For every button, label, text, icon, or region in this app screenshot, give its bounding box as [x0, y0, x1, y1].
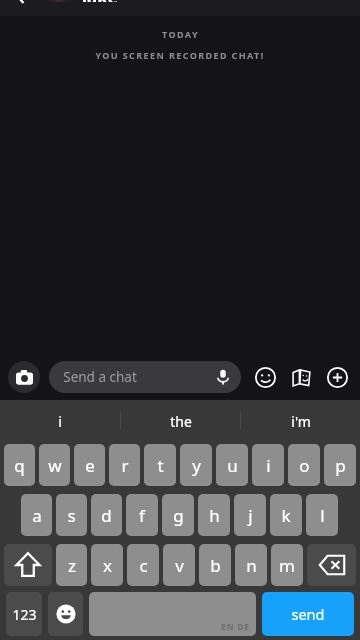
button[interactable]: a [21, 494, 52, 536]
staticText: o [299, 454, 310, 477]
button[interactable]: n [235, 544, 267, 586]
staticText: f [139, 504, 145, 527]
button[interactable]: More [322, 362, 352, 392]
button[interactable]: h [198, 494, 230, 536]
button[interactable]: u [216, 444, 248, 486]
staticText: l [320, 504, 325, 527]
button[interactable]: e [74, 444, 105, 486]
button[interactable]: i'm [241, 400, 360, 442]
staticText: 123 [12, 605, 37, 624]
staticText: t [157, 454, 164, 477]
staticText: YOU SCREEN RECORDED CHAT! [95, 49, 265, 61]
staticText: v [175, 554, 184, 577]
staticText: u [227, 454, 238, 477]
button[interactable]: m [271, 544, 303, 586]
staticText: e [85, 454, 95, 477]
staticText: w [48, 454, 62, 477]
button[interactable]: i [252, 444, 284, 486]
staticText: i [58, 412, 62, 431]
button[interactable]: d [91, 494, 122, 536]
button[interactable]: o [288, 444, 320, 486]
button[interactable]: s [56, 494, 87, 536]
button[interactable]: Backspace [307, 544, 356, 586]
staticText: x [103, 554, 112, 577]
staticText: send [291, 604, 325, 624]
staticText: c [139, 554, 148, 577]
staticText: r [121, 454, 129, 477]
staticText: n [246, 554, 257, 577]
button[interactable] [44, 0, 74, 2]
staticText: z [68, 554, 76, 577]
button[interactable]: x [91, 544, 123, 586]
button[interactable]: k [270, 494, 302, 536]
staticText: EN DE [221, 621, 250, 633]
button[interactable]: Shift [4, 544, 52, 586]
staticText: m [279, 554, 295, 577]
staticText: b [210, 554, 221, 577]
button[interactable]: 123 [6, 592, 42, 636]
button[interactable]: l [306, 494, 338, 536]
button[interactable]: i [0, 400, 120, 442]
staticText: h [209, 504, 220, 527]
staticText: Send a chat [63, 368, 137, 386]
button[interactable]: c [127, 544, 159, 586]
staticText: k [281, 504, 291, 527]
staticText: s [67, 504, 76, 527]
staticText: i [266, 454, 271, 477]
staticText: j [248, 504, 253, 527]
button[interactable]: Stickers [286, 362, 316, 392]
other: Voice message [215, 369, 231, 385]
button[interactable]: the [121, 400, 240, 442]
button[interactable]: Emoji keyboard [48, 592, 83, 636]
button[interactable]: t [144, 444, 176, 486]
button[interactable]: j [234, 494, 266, 536]
staticText: d [101, 504, 112, 527]
staticText: p [335, 454, 346, 477]
button[interactable]: p [324, 444, 356, 486]
button[interactable]: q [4, 444, 35, 486]
staticText: jake [82, 0, 118, 2]
staticText: i'm [291, 412, 311, 431]
button[interactable]: f [126, 494, 158, 536]
staticText: g [173, 504, 184, 527]
staticText: a [32, 504, 42, 527]
button[interactable]: Emoji [250, 362, 280, 392]
staticText: y [192, 454, 201, 477]
button[interactable]: r [109, 444, 140, 486]
button[interactable]: g [162, 494, 194, 536]
button[interactable]: Send a chat [49, 361, 241, 393]
button[interactable]: send [262, 592, 354, 636]
staticText: the [170, 412, 192, 431]
button[interactable]: w [39, 444, 70, 486]
button[interactable]: Space [89, 592, 256, 636]
staticText: TODAY [162, 28, 199, 40]
staticText: q [14, 454, 25, 477]
button[interactable]: Camera [8, 361, 40, 393]
button[interactable]: b [199, 544, 231, 586]
button[interactable]: y [180, 444, 212, 486]
button[interactable]: Back [6, 0, 36, 4]
button[interactable]: z [56, 544, 87, 586]
button[interactable]: v [163, 544, 195, 586]
